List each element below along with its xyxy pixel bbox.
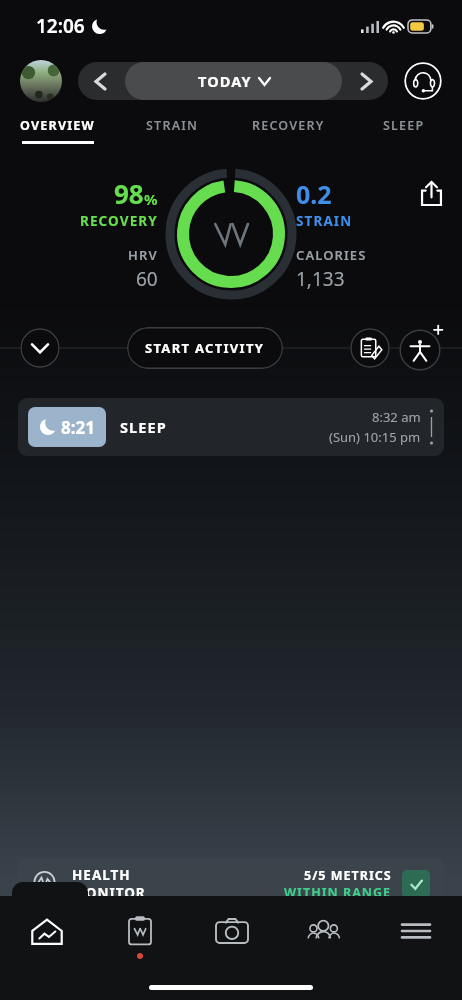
staticText: STRAIN [146,117,199,134]
button[interactable]: HEALTH [18,858,444,910]
staticText: HRV [128,246,158,264]
staticText: OVERVIEW [20,117,95,134]
button[interactable]: STRAIN [115,110,230,150]
staticText: 98 [114,176,144,211]
staticText: SLEEP [120,417,167,437]
staticText: 1,133 [296,266,345,292]
button[interactable]: Expand [20,328,60,368]
button[interactable]: 82% [18,920,444,984]
button[interactable]: RECOVERY [230,110,346,150]
staticText: SLEEP [383,117,425,134]
staticText: 60 [136,266,158,292]
staticText: CALORIES [296,246,367,264]
button[interactable]: SLEEP [346,110,462,150]
staticText: 12:06 [36,13,85,39]
button[interactable]: Journal [350,328,390,368]
button[interactable]: Next day [344,62,388,100]
button[interactable]: OVERVIEW [0,110,115,150]
button[interactable]: Menu [370,896,462,966]
staticText: TODAY [198,71,252,91]
button[interactable]: Previous day [78,62,122,100]
staticText: MONITOR [72,884,146,902]
staticText: 8:32 am [372,408,421,426]
button[interactable]: TODAY [125,62,342,100]
staticText: 8:21 [61,416,95,439]
staticText: (Sun) 10:15 pm [329,428,421,446]
button[interactable]: Home [0,896,93,966]
button[interactable]: 8:21 [18,398,444,456]
staticText: STRAIN [296,212,353,230]
staticText: 0.2 [296,177,332,211]
button[interactable]: Profile [20,60,62,102]
staticText: RECOVERY [252,117,325,134]
button[interactable]: Camera [186,896,278,966]
button[interactable]: Journal [93,896,186,966]
button[interactable]: Community [278,896,370,966]
button[interactable]: Support [404,62,442,100]
button[interactable]: Add activity [398,326,442,370]
button[interactable]: START ACTIVITY [127,327,283,369]
staticText: 5/5 METRICS [304,867,392,884]
staticText: WITHIN RANGE [284,884,392,901]
staticText: % [144,189,158,209]
staticText: RECOVERY [80,212,158,230]
staticText: HEALTH [72,866,131,884]
staticText: START ACTIVITY [145,339,265,357]
staticText: 82% [57,941,92,964]
button[interactable]: Share [414,176,448,210]
